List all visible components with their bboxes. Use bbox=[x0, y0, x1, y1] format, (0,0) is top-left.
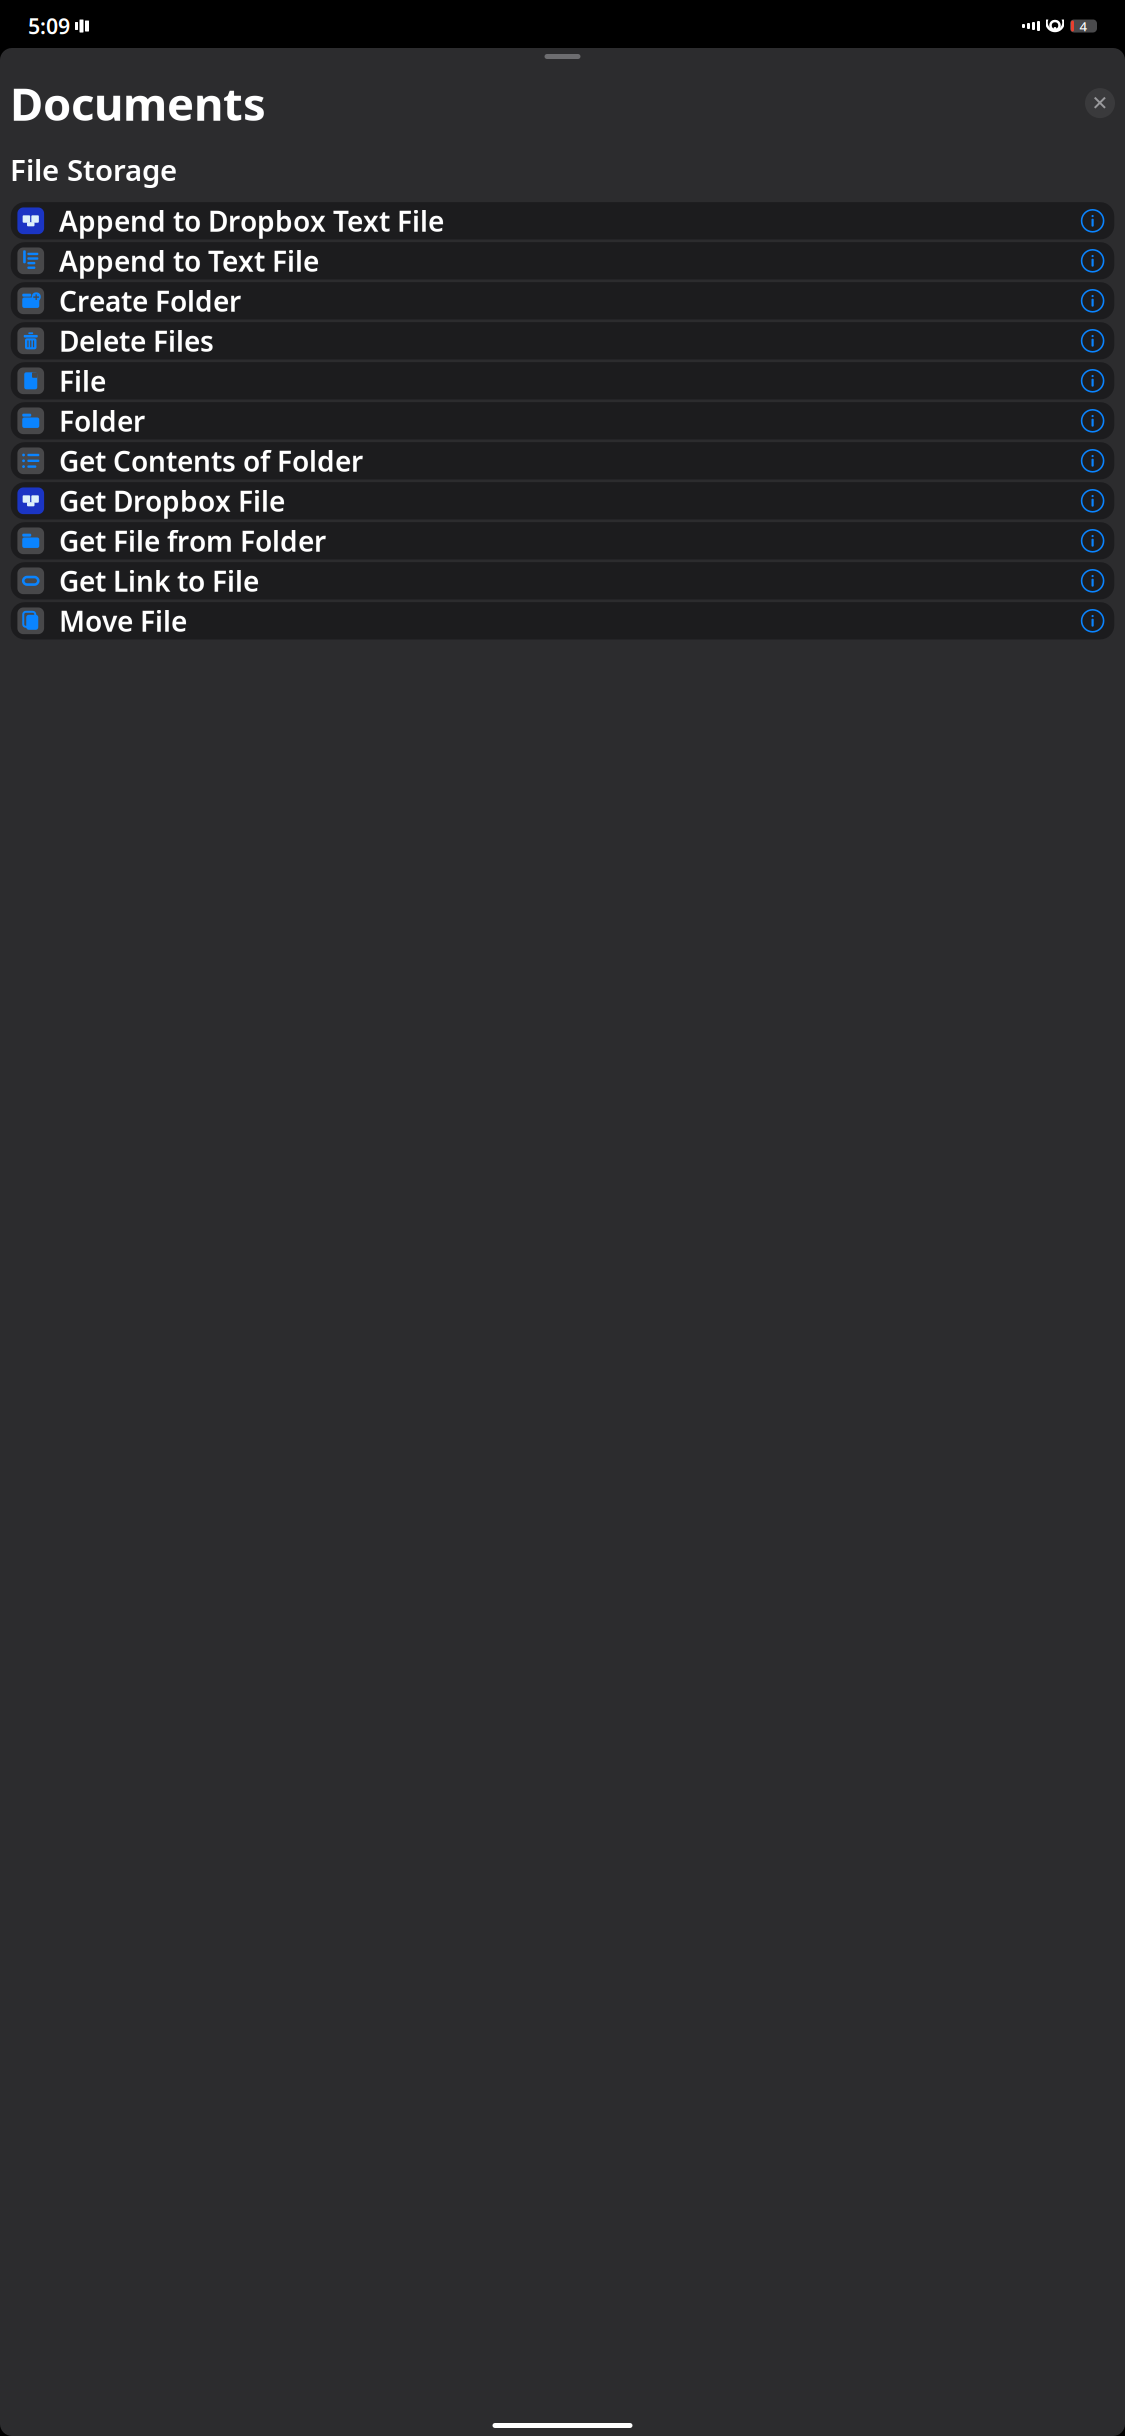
button[interactable]: Get Contents of Folder bbox=[11, 442, 1114, 479]
staticText: 5:09 bbox=[28, 12, 70, 40]
staticText: Append to Dropbox Text File bbox=[59, 202, 444, 239]
button[interactable]: Get Link to File bbox=[11, 562, 1114, 599]
button[interactable]: Delete Files bbox=[11, 322, 1114, 359]
staticText: Delete Files bbox=[59, 322, 214, 359]
button[interactable]: Append to Dropbox Text File bbox=[11, 202, 1114, 239]
staticText: File Storage bbox=[10, 150, 177, 189]
staticText: Folder bbox=[59, 402, 145, 439]
staticText: Create Folder bbox=[59, 282, 241, 319]
staticText: Get Dropbox File bbox=[59, 482, 285, 519]
button[interactable]: Get Dropbox File bbox=[11, 482, 1114, 519]
button[interactable]: Move File bbox=[11, 602, 1114, 639]
button[interactable]: Append to Text File bbox=[11, 242, 1114, 279]
staticText: Move File bbox=[59, 602, 187, 639]
staticText: Documents bbox=[10, 73, 266, 133]
staticText: Get Link to File bbox=[59, 562, 259, 599]
staticText: + bbox=[33, 289, 40, 305]
button[interactable]: Get File from Folder bbox=[11, 522, 1114, 559]
staticText: Get File from Folder bbox=[59, 522, 326, 559]
button[interactable]: Close bbox=[1085, 88, 1115, 118]
staticText: ✕ bbox=[1091, 92, 1108, 114]
button[interactable]: Folder bbox=[11, 402, 1114, 439]
staticText: File bbox=[59, 362, 106, 399]
staticText: 4 bbox=[1079, 17, 1087, 35]
staticText: Append to Text File bbox=[59, 242, 319, 279]
button[interactable]: + bbox=[11, 282, 1114, 319]
staticText: Get Contents of Folder bbox=[59, 442, 363, 479]
button[interactable]: File bbox=[11, 362, 1114, 399]
